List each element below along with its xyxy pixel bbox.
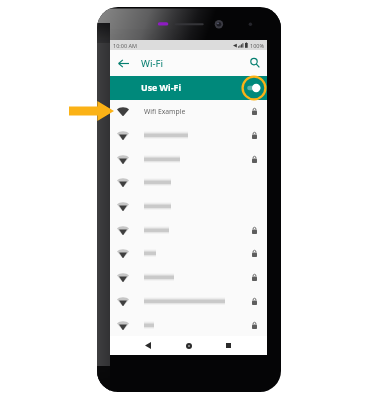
button[interactable]: [110, 289, 267, 313]
button[interactable]: Recent apps: [219, 336, 237, 355]
button[interactable]: [110, 218, 267, 242]
button[interactable]: [110, 170, 267, 194]
staticText: 10:00 AM: [113, 42, 137, 49]
button[interactable]: [110, 241, 267, 265]
button[interactable]: Back: [139, 336, 157, 355]
button[interactable]: Wifi Example: [110, 99, 267, 123]
staticText: Wifi Example: [144, 107, 186, 116]
other: Pointer: [69, 101, 114, 121]
button[interactable]: [110, 123, 267, 147]
button[interactable]: Search: [247, 55, 263, 71]
button[interactable]: [110, 147, 267, 171]
button[interactable]: Use Wi-Fi: [110, 76, 267, 100]
button[interactable]: Home: [180, 336, 198, 355]
button[interactable]: Back: [115, 55, 131, 71]
staticText: Wi-Fi: [141, 57, 164, 70]
button[interactable]: [110, 313, 267, 337]
staticText: Use Wi-Fi: [141, 82, 182, 94]
button[interactable]: [110, 194, 267, 218]
staticText: 100%: [250, 42, 265, 49]
button[interactable]: [110, 265, 267, 289]
